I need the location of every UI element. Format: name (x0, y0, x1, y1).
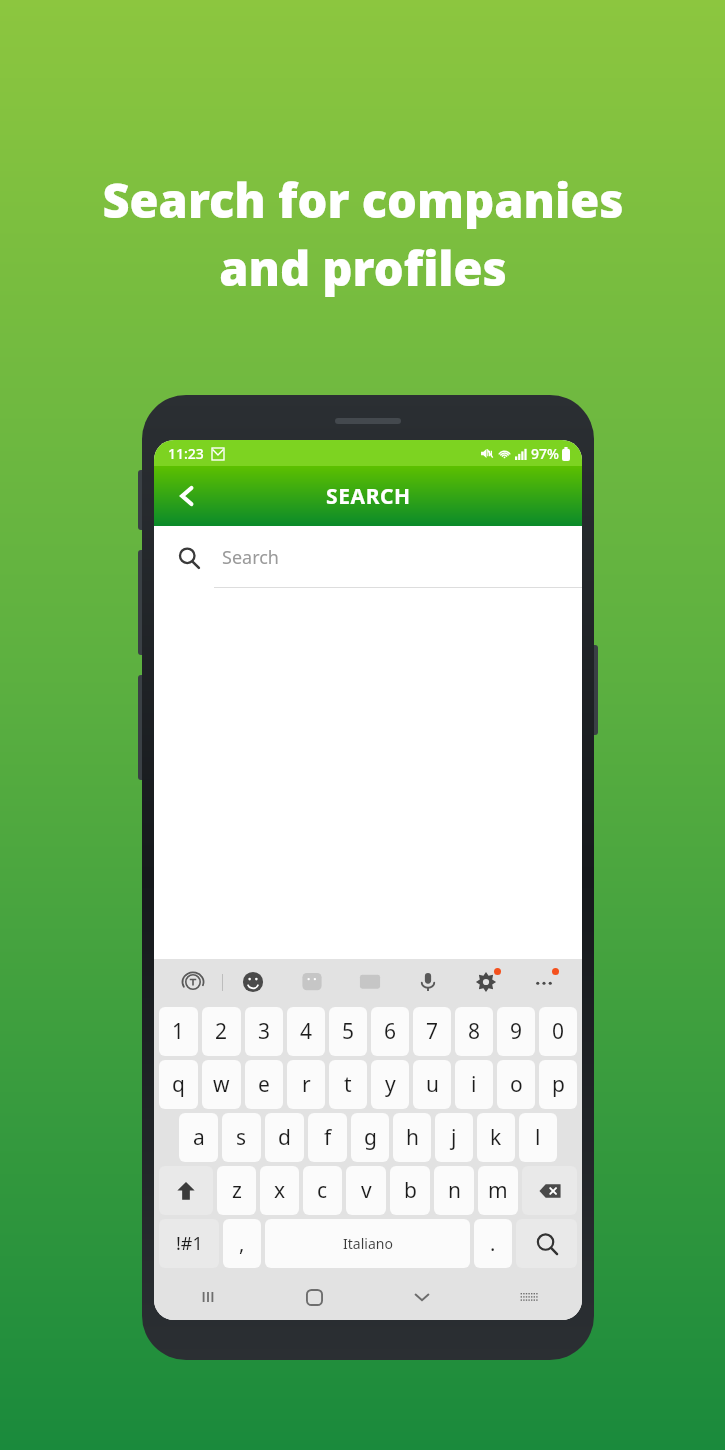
button[interactable]: s (222, 1113, 261, 1162)
button[interactable]: !#1 (159, 1219, 219, 1268)
staticText: Italiano (343, 1234, 393, 1253)
staticText: 8 (468, 1017, 481, 1046)
button[interactable]: Hide keyboard (368, 1274, 475, 1320)
staticText: 3 (258, 1017, 271, 1046)
button[interactable]: Italiano (265, 1219, 470, 1268)
button[interactable]: 4 (287, 1007, 325, 1056)
button[interactable]: Home (261, 1274, 368, 1320)
staticText: 5 (342, 1017, 355, 1046)
button[interactable]: 6 (371, 1007, 409, 1056)
button[interactable]: t (329, 1060, 367, 1109)
staticText: e (258, 1070, 270, 1099)
staticText: 6 (384, 1017, 397, 1046)
button[interactable]: Settings (457, 959, 515, 1005)
button[interactable]: v (346, 1166, 386, 1215)
staticText: s (236, 1123, 247, 1152)
staticText: v (361, 1176, 372, 1205)
staticText: i (471, 1070, 477, 1099)
button[interactable]: f (308, 1113, 347, 1162)
button[interactable]: o (497, 1060, 535, 1109)
staticText: 0 (552, 1017, 565, 1046)
staticText: Search for companies (102, 168, 624, 232)
staticText: g (364, 1123, 377, 1152)
button[interactable]: 9 (497, 1007, 535, 1056)
staticText: SEARCH (326, 482, 411, 511)
button[interactable]: Switch keyboard (475, 1274, 582, 1320)
button[interactable]: Stickers (282, 959, 341, 1005)
button[interactable]: u (413, 1060, 451, 1109)
button[interactable]: Search (154, 526, 582, 588)
staticText: d (278, 1123, 291, 1152)
staticText: !#1 (176, 1231, 203, 1256)
button[interactable]: k (477, 1113, 515, 1162)
staticText: l (535, 1123, 541, 1152)
button[interactable]: More options (515, 959, 573, 1005)
staticText: p (552, 1070, 565, 1099)
button[interactable]: g (351, 1113, 389, 1162)
button[interactable]: 1 (159, 1007, 198, 1056)
button[interactable]: e (245, 1060, 283, 1109)
button[interactable]: y (371, 1060, 409, 1109)
staticText: Search (222, 545, 279, 570)
button[interactable]: Search (516, 1219, 577, 1268)
staticText: 4 (300, 1017, 313, 1046)
button[interactable]: Voice input (399, 959, 457, 1005)
button[interactable]: Back (164, 473, 210, 519)
button[interactable]: , (223, 1219, 261, 1268)
button[interactable]: 8 (455, 1007, 493, 1056)
staticText: 2 (215, 1017, 228, 1046)
button[interactable]: 7 (413, 1007, 451, 1056)
staticText: z (232, 1176, 242, 1205)
button[interactable]: z (217, 1166, 256, 1215)
button[interactable]: 2 (202, 1007, 241, 1056)
button[interactable]: Emoji (223, 959, 282, 1005)
button[interactable]: 3 (245, 1007, 283, 1056)
button[interactable]: h (393, 1113, 431, 1162)
button[interactable]: j (435, 1113, 473, 1162)
button[interactable]: 0 (539, 1007, 577, 1056)
staticText: 1 (172, 1017, 185, 1046)
staticText: , (239, 1230, 245, 1257)
staticText: h (406, 1123, 419, 1152)
staticText: c (317, 1176, 328, 1205)
staticText: 7 (426, 1017, 439, 1046)
staticText: 97% (531, 444, 559, 463)
staticText: k (490, 1123, 502, 1152)
button[interactable]: r (287, 1060, 325, 1109)
button[interactable]: m (478, 1166, 518, 1215)
button[interactable]: GIF (341, 959, 399, 1005)
button[interactable]: c (303, 1166, 342, 1215)
staticText: m (488, 1176, 508, 1205)
staticText: 11:23 (168, 444, 204, 463)
button[interactable]: w (202, 1060, 241, 1109)
button[interactable]: n (434, 1166, 474, 1215)
staticText: y (385, 1070, 396, 1099)
staticText: t (344, 1070, 352, 1099)
staticText: 9 (510, 1017, 523, 1046)
button[interactable]: b (390, 1166, 430, 1215)
button[interactable]: l (519, 1113, 557, 1162)
staticText: w (213, 1070, 230, 1099)
button[interactable]: d (265, 1113, 304, 1162)
button[interactable]: q (159, 1060, 198, 1109)
button[interactable]: i (455, 1060, 493, 1109)
staticText: o (510, 1070, 523, 1099)
staticText: b (404, 1176, 417, 1205)
button[interactable]: x (260, 1166, 299, 1215)
staticText: j (451, 1123, 457, 1152)
button[interactable]: a (179, 1113, 218, 1162)
staticText: n (448, 1176, 461, 1205)
staticText: . (490, 1230, 496, 1257)
staticText: a (193, 1123, 205, 1152)
button[interactable]: Recents (154, 1274, 261, 1320)
button[interactable]: Backspace (522, 1166, 577, 1215)
button[interactable]: Translate (163, 959, 222, 1005)
staticText: q (172, 1070, 185, 1099)
staticText: r (302, 1070, 311, 1099)
button[interactable]: Shift (159, 1166, 213, 1215)
button[interactable]: 5 (329, 1007, 367, 1056)
button[interactable]: p (539, 1060, 577, 1109)
staticText: x (274, 1176, 286, 1205)
staticText: f (324, 1123, 332, 1152)
button[interactable]: . (474, 1219, 512, 1268)
